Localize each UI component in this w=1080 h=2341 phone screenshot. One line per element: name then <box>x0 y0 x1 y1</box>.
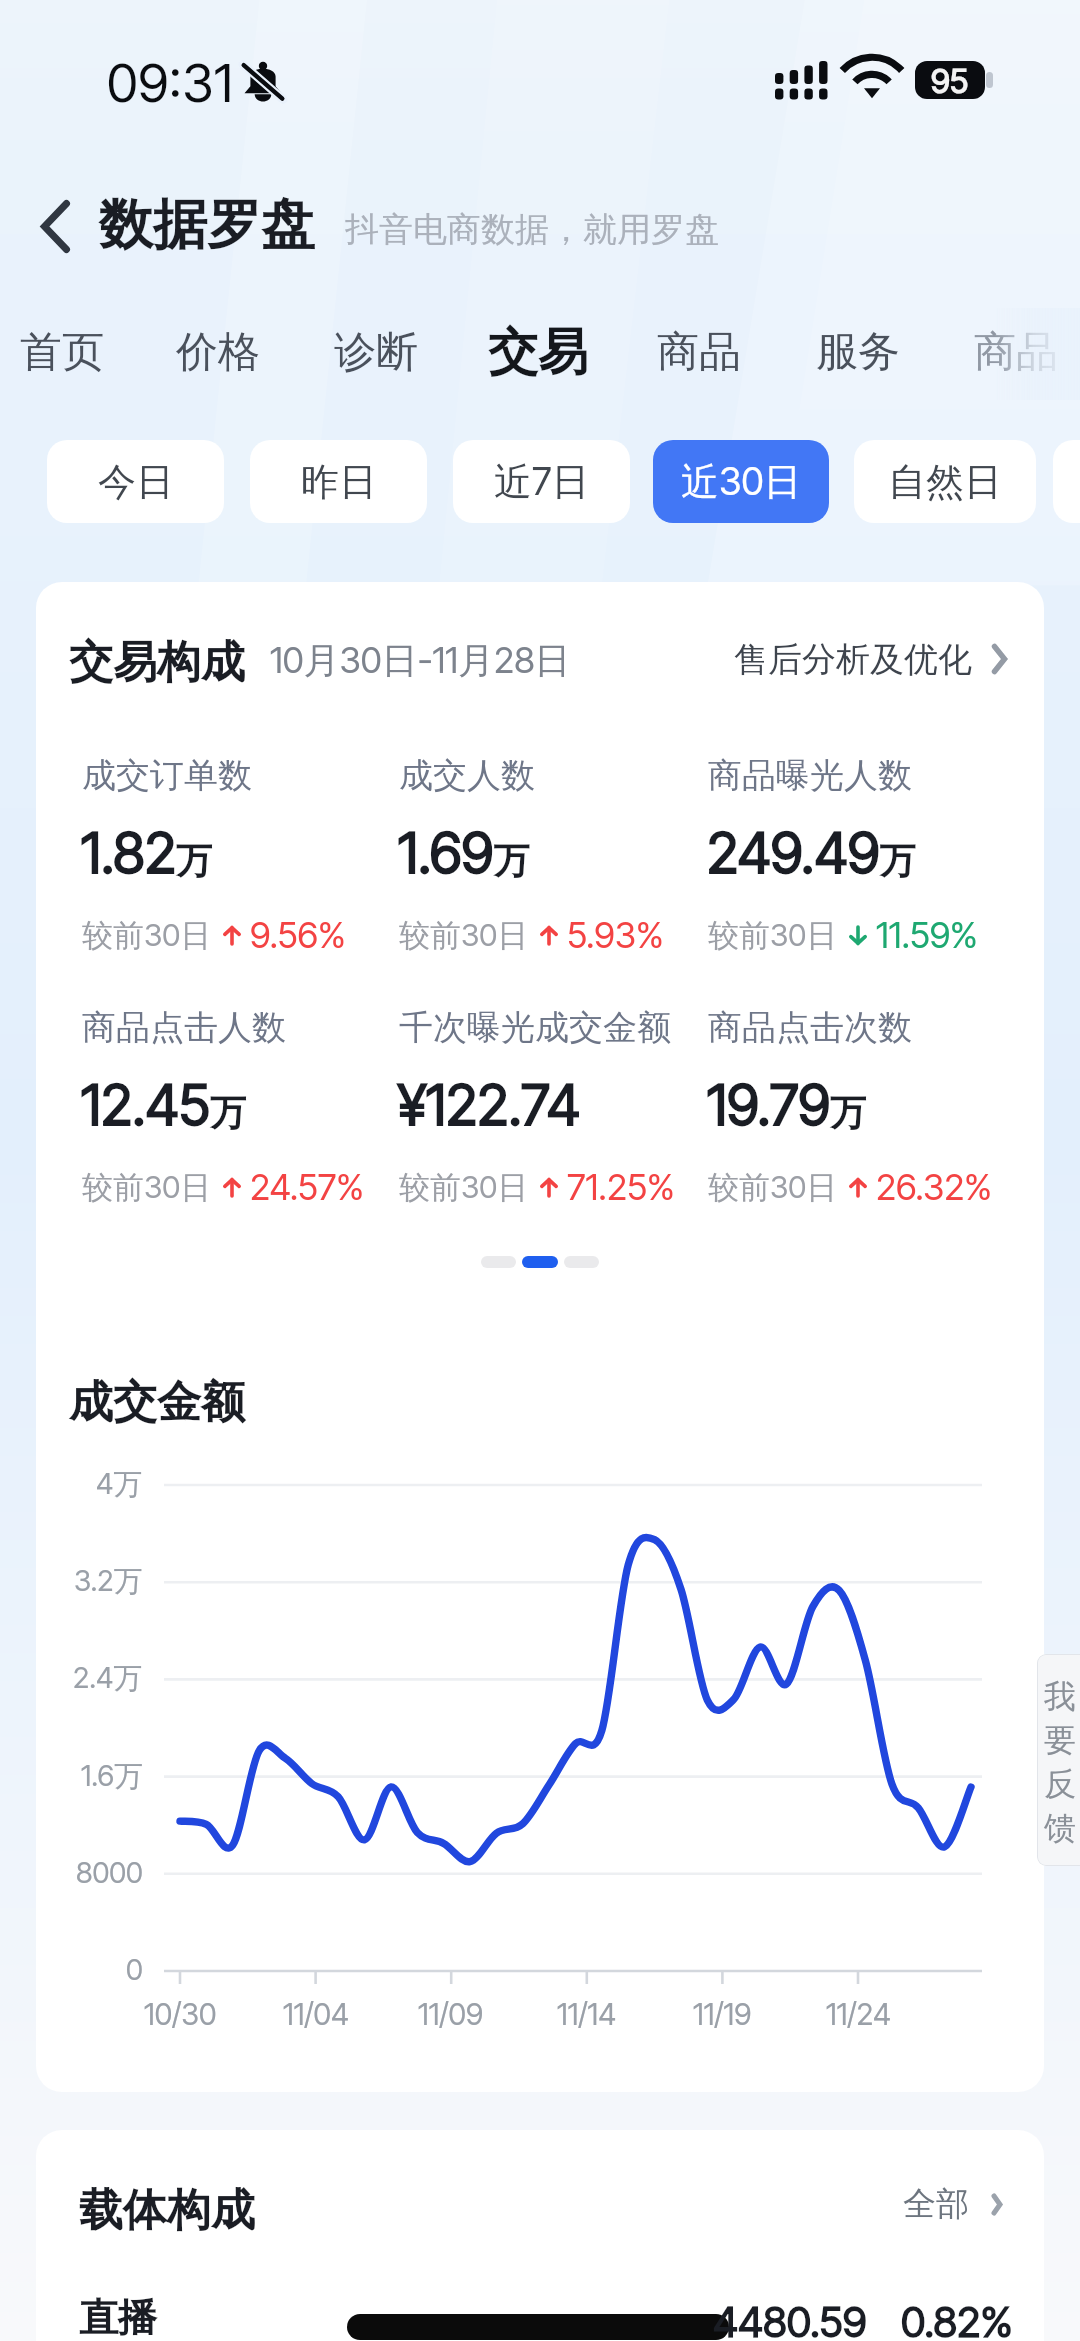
staticText: 交易 <box>488 321 588 384</box>
staticText: 商品曝光人数 <box>708 754 912 797</box>
staticText: 9.56% <box>250 913 346 957</box>
staticText: 近7日 <box>494 458 590 506</box>
staticText: 诊断 <box>334 326 418 379</box>
staticText: 71.25% <box>567 1165 675 1209</box>
staticText: 首页 <box>20 326 104 379</box>
staticText: 商品点击人数 <box>82 1006 286 1049</box>
button[interactable]: 服务 <box>794 310 922 394</box>
button[interactable]: 近7日 <box>453 440 630 523</box>
button[interactable]: 售后分析及优化 <box>734 622 1010 696</box>
staticText: 4万 <box>96 1466 143 1503</box>
button[interactable]: Back <box>14 182 96 270</box>
staticText: 0 <box>126 1952 143 1987</box>
staticText: 95 <box>931 61 969 99</box>
staticText: 交易构成 <box>69 635 245 690</box>
staticText: 19.79万 <box>707 1071 866 1139</box>
button[interactable]: 近30日 <box>653 440 829 523</box>
staticText: 2.4万 <box>73 1660 143 1697</box>
button[interactable]: 自然日 <box>854 440 1036 523</box>
staticText: 11/19 <box>693 1996 752 2032</box>
staticText: 全部 <box>903 2183 969 2225</box>
staticText: 12.45万 <box>81 1071 246 1139</box>
staticText: 较前30日 <box>399 1168 529 1207</box>
staticText: 1.6万 <box>81 1758 143 1795</box>
staticText: 商品 <box>657 326 741 379</box>
staticText: 商品 <box>974 326 1058 379</box>
button[interactable]: 诊断 <box>312 310 440 394</box>
staticText: 直播 <box>79 2293 157 2341</box>
staticText: 24.57% <box>250 1165 364 1209</box>
button[interactable] <box>74 992 374 1197</box>
staticText: 11/14 <box>557 1996 617 2032</box>
button[interactable]: Metric pages <box>36 1243 1044 1281</box>
button[interactable]: 交易 <box>465 310 611 394</box>
button[interactable]: 今日 <box>47 440 224 523</box>
button[interactable]: 昨日 <box>250 440 427 523</box>
staticText: 数据罗盘 <box>99 191 315 259</box>
staticText: 09:31 <box>107 51 234 115</box>
button[interactable] <box>74 740 374 945</box>
staticText: 成交金额 <box>69 1375 245 1430</box>
staticText: 5.93% <box>567 913 664 957</box>
button[interactable] <box>700 992 1000 1197</box>
staticText: 服务 <box>816 326 900 379</box>
button[interactable]: 首页 <box>0 310 126 394</box>
staticText: 10/30 <box>144 1996 217 2032</box>
button[interactable]: 价格 <box>154 310 282 394</box>
staticText: 11/24 <box>826 1996 891 2032</box>
staticText: 0.82% <box>901 2296 1013 2341</box>
staticText: 商品点击次数 <box>708 1006 912 1049</box>
staticText: 1.69万 <box>398 819 530 887</box>
staticText: 昨日 <box>301 458 377 506</box>
staticText: 较前30日 <box>82 916 212 955</box>
staticText: 8000 <box>76 1855 143 1890</box>
button[interactable]: 全部 <box>903 2168 1005 2240</box>
staticText: 成交订单数 <box>82 754 252 797</box>
button[interactable]: 我 <box>1037 1654 1080 1866</box>
staticText: 11.59% <box>876 913 978 957</box>
staticText: 11/04 <box>283 1996 349 2032</box>
staticText: 成交人数 <box>399 754 535 797</box>
staticText: 较前30日 <box>708 1168 838 1207</box>
staticText: 载体构成 <box>79 2183 255 2238</box>
staticText: 馈 <box>1044 1808 1076 1848</box>
button[interactable]: 商品 <box>635 310 763 394</box>
staticText: 26.32% <box>876 1165 992 1209</box>
button[interactable] <box>391 740 691 945</box>
staticText: 近30日 <box>681 458 802 506</box>
button[interactable] <box>700 740 1000 945</box>
button[interactable] <box>391 992 691 1197</box>
staticText: 千次曝光成交金额 <box>399 1006 671 1049</box>
button[interactable]: 商品 <box>952 310 1080 394</box>
staticText: 较前30日 <box>399 916 529 955</box>
staticText: 较前30日 <box>708 916 838 955</box>
staticText: ¥122.74 <box>398 1071 580 1139</box>
staticText: 自然日 <box>888 458 1002 506</box>
staticText: 4480.59 <box>713 2296 867 2341</box>
staticText: 249.49万 <box>707 819 916 887</box>
staticText: 售后分析及优化 <box>734 638 972 681</box>
staticText: 反 <box>1044 1764 1076 1804</box>
staticText: 11/09 <box>418 1996 484 2032</box>
staticText: 较前30日 <box>82 1168 212 1207</box>
button[interactable]: More date ranges <box>1053 440 1080 523</box>
staticText: 我 <box>1044 1676 1076 1716</box>
staticText: 抖音电商数据，就用罗盘 <box>345 208 719 251</box>
staticText: 3.2万 <box>74 1563 143 1600</box>
staticText: 1.82万 <box>81 819 212 887</box>
staticText: 要 <box>1044 1720 1076 1760</box>
staticText: 10月30日-11月28日 <box>270 638 571 684</box>
staticText: 价格 <box>176 326 260 379</box>
staticText: 今日 <box>98 458 174 506</box>
